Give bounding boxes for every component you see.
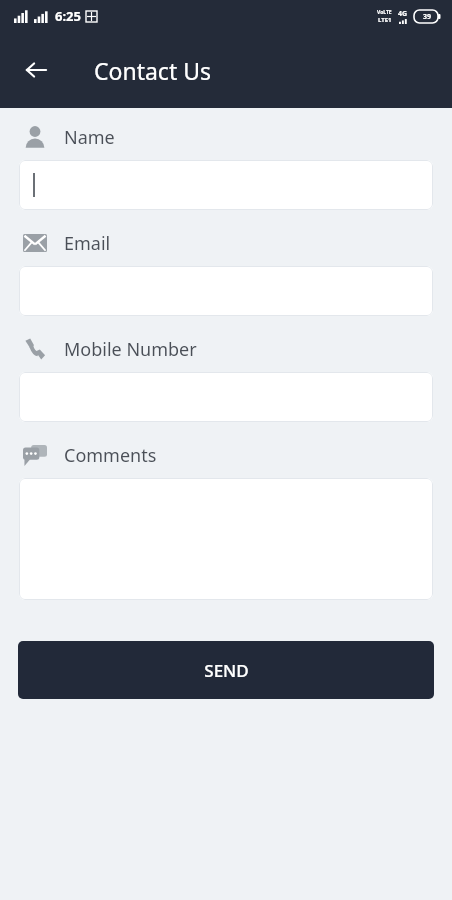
button[interactable] [19,478,433,600]
staticText: Mobile Number [64,337,197,362]
staticText: Email [64,231,111,256]
staticText: LTE1 [378,16,392,24]
button[interactable] [19,160,433,210]
staticText: Comments [64,443,157,468]
staticText: VoLTE [377,9,392,16]
button[interactable] [19,266,433,316]
staticText: 4G [398,9,408,19]
button[interactable] [19,372,433,422]
staticText: SEND [204,659,249,682]
button[interactable]: SEND [18,641,434,699]
staticText: Name [64,125,115,150]
staticText: Contact Us [94,55,212,86]
button[interactable]: Back [14,48,58,92]
staticText: 6:25 [55,7,81,25]
staticText: 39 [423,12,432,22]
